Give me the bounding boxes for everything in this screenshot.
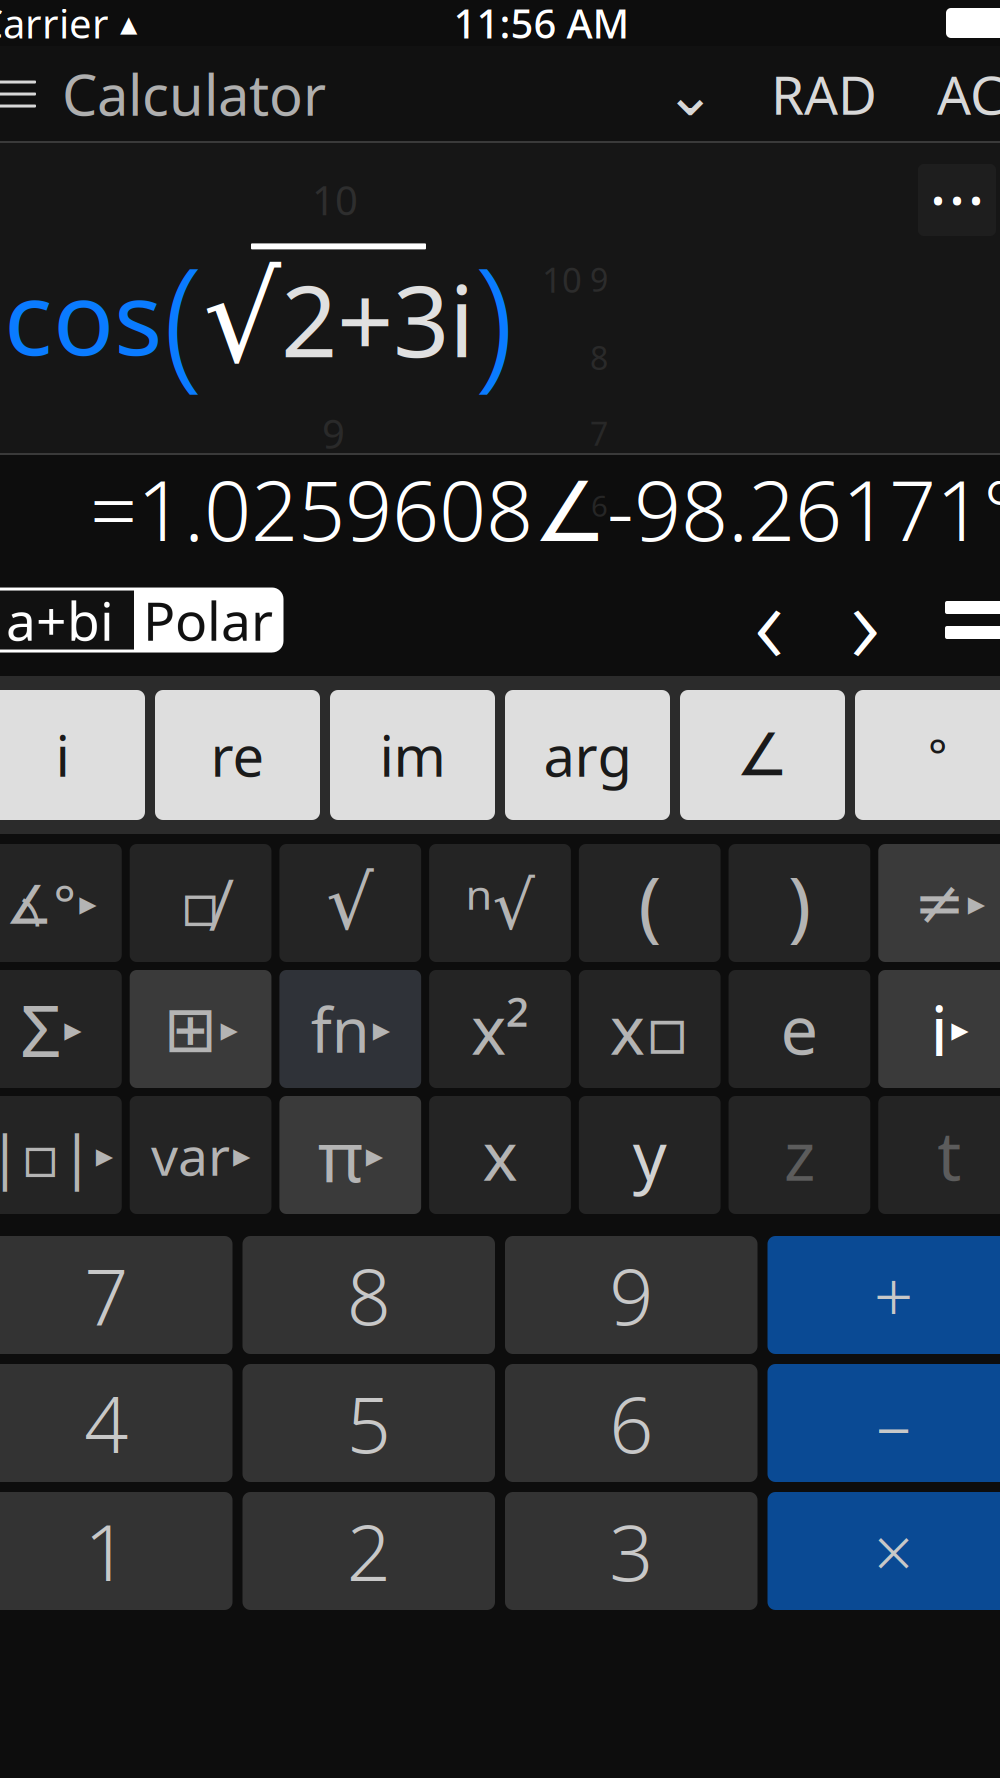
staticText: 9 <box>322 407 345 460</box>
button[interactable]: ⊞ <box>130 970 271 1088</box>
staticText: 9 <box>590 258 608 300</box>
button[interactable]: i <box>0 690 145 820</box>
staticText: Calculator <box>62 57 326 131</box>
button[interactable]: 7 <box>0 1236 232 1354</box>
staticText: √ <box>326 861 374 945</box>
staticText: arg <box>543 718 631 792</box>
staticText: 3 <box>609 1500 653 1602</box>
button[interactable]: π <box>279 1096 421 1214</box>
button[interactable]: fn <box>279 970 421 1088</box>
staticText: ⁿ√ <box>465 859 534 947</box>
button[interactable]: i <box>878 970 1000 1088</box>
staticText: re <box>210 718 264 792</box>
staticText: ▴ <box>109 3 137 43</box>
staticText: x² <box>471 985 529 1073</box>
staticText: ▸ <box>79 883 96 923</box>
button[interactable]: 9 <box>505 1236 757 1354</box>
button[interactable]: Polar <box>134 589 282 651</box>
staticText: 5 <box>347 1372 391 1474</box>
button[interactable]: ≠ <box>878 844 1000 962</box>
button[interactable]: – <box>767 1364 1000 1482</box>
staticText: i <box>55 718 69 792</box>
staticText: =1.0259608∠-98.26171° <box>90 454 1000 564</box>
staticText: ▸ <box>96 1135 113 1175</box>
button[interactable]: History <box>936 580 1000 660</box>
button[interactable]: x▫ <box>579 970 721 1088</box>
button[interactable]: ⁿ√ <box>429 844 571 962</box>
button[interactable]: re <box>155 690 320 820</box>
button[interactable]: √ <box>279 844 421 962</box>
staticText: › <box>850 544 880 696</box>
button[interactable]: 1 <box>0 1492 232 1610</box>
staticText: ▸ <box>221 1009 238 1049</box>
button[interactable]: 8 <box>242 1236 495 1354</box>
staticText: ▫̸ <box>180 862 222 944</box>
button[interactable]: ° <box>855 690 1000 820</box>
staticText: 2+3i <box>281 253 474 384</box>
button[interactable]: a+bi <box>0 589 134 651</box>
button[interactable]: ∡° <box>0 844 122 962</box>
staticText: |▫| <box>0 1116 93 1194</box>
button[interactable]: × <box>767 1492 1000 1610</box>
staticText: ⌄ <box>664 59 715 129</box>
button[interactable]: 5 <box>242 1364 495 1482</box>
button[interactable]: var <box>130 1096 271 1214</box>
button[interactable]: + <box>767 1236 1000 1354</box>
staticText: ≠ <box>914 868 965 938</box>
button[interactable]: 6 <box>505 1364 757 1482</box>
button[interactable]: x <box>429 1096 571 1214</box>
staticText: ‹ <box>754 544 784 696</box>
staticText: ▸ <box>951 1009 968 1049</box>
staticText: 11:56 AM <box>453 0 629 49</box>
staticText: var <box>151 1120 230 1190</box>
staticText: × <box>874 1505 914 1597</box>
staticText: ▸ <box>968 883 985 923</box>
staticText: t <box>937 1111 961 1199</box>
button[interactable]: 2 <box>242 1492 495 1610</box>
staticText: ) <box>474 220 514 412</box>
staticText: ∡° <box>5 868 76 938</box>
staticText: 7 <box>84 1244 128 1346</box>
staticText: x▫ <box>610 985 690 1073</box>
staticText: 4 <box>84 1372 128 1474</box>
staticText: 10 <box>312 173 358 226</box>
staticText: 8 <box>590 336 608 379</box>
staticText: + <box>874 1249 914 1341</box>
staticText: π <box>318 1109 363 1201</box>
button[interactable]: e <box>729 970 870 1088</box>
button[interactable]: z <box>729 1096 870 1214</box>
button[interactable]: arg <box>505 690 670 820</box>
staticText: ° <box>928 725 947 785</box>
button[interactable]: ▫̸ <box>130 844 271 962</box>
staticText: √ <box>203 249 281 389</box>
button[interactable]: RAD <box>765 59 883 129</box>
staticText: Polar <box>143 585 273 655</box>
staticText: 7 <box>590 412 608 455</box>
button[interactable]: |▫| <box>0 1096 122 1214</box>
button[interactable]: Calculator <box>0 47 326 141</box>
button[interactable]: More options <box>918 164 996 236</box>
button[interactable]: im <box>330 690 495 820</box>
button[interactable]: x² <box>429 970 571 1088</box>
button[interactable]: 3 <box>505 1492 757 1610</box>
button[interactable]: Σ <box>0 970 122 1088</box>
button[interactable]: Previous <box>732 580 806 660</box>
staticText: ( <box>163 220 203 412</box>
button[interactable]: AC <box>931 59 1000 129</box>
button[interactable]: ∠ <box>680 690 845 820</box>
staticText: cos <box>4 249 163 383</box>
button[interactable]: Next <box>828 580 902 660</box>
button[interactable]: ( <box>579 844 721 962</box>
staticText: y <box>633 1111 667 1199</box>
staticText: 9 <box>609 1244 653 1346</box>
staticText: a+bi <box>6 585 114 655</box>
button[interactable]: Expand <box>655 64 725 124</box>
button[interactable]: 4 <box>0 1364 232 1482</box>
staticText: • • • <box>932 180 981 219</box>
staticText: ▸ <box>373 1009 390 1049</box>
staticText: ∠ <box>736 722 789 788</box>
button[interactable]: ) <box>729 844 870 962</box>
button[interactable]: t <box>878 1096 1000 1214</box>
staticText: e <box>780 985 818 1073</box>
button[interactable]: y <box>579 1096 721 1214</box>
